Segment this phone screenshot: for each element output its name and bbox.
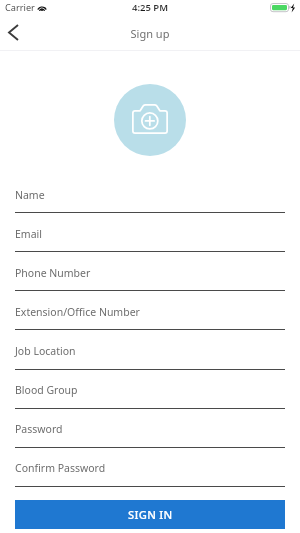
button[interactable]: Phone Number xyxy=(15,260,300,286)
button[interactable]: Extension/Office Number xyxy=(15,299,300,325)
staticText: Extension/Office Number xyxy=(15,305,140,319)
button[interactable]: Email xyxy=(15,221,300,247)
button[interactable]: Blood Group xyxy=(15,377,300,403)
staticText: Password xyxy=(15,422,63,436)
staticText: Phone Number xyxy=(15,266,91,280)
staticText: Blood Group xyxy=(15,383,78,397)
button[interactable]: Name xyxy=(15,182,300,208)
staticText: 4:25 PM xyxy=(0,1,300,14)
staticText: SIGN IN xyxy=(128,507,173,522)
button[interactable]: SIGN IN xyxy=(15,500,285,529)
button[interactable]: Confirm Password xyxy=(15,455,300,481)
staticText: Confirm Password xyxy=(15,461,106,475)
button[interactable]: Job Location xyxy=(15,338,300,364)
button[interactable]: Add profile photo xyxy=(114,84,186,156)
button[interactable]: Password xyxy=(15,416,300,442)
staticText: Name xyxy=(15,188,45,202)
staticText: Email xyxy=(15,227,42,241)
staticText: Sign up xyxy=(0,26,300,41)
staticText: Job Location xyxy=(15,344,76,358)
button[interactable]: Back xyxy=(0,18,28,51)
staticText: Carrier xyxy=(5,1,35,14)
